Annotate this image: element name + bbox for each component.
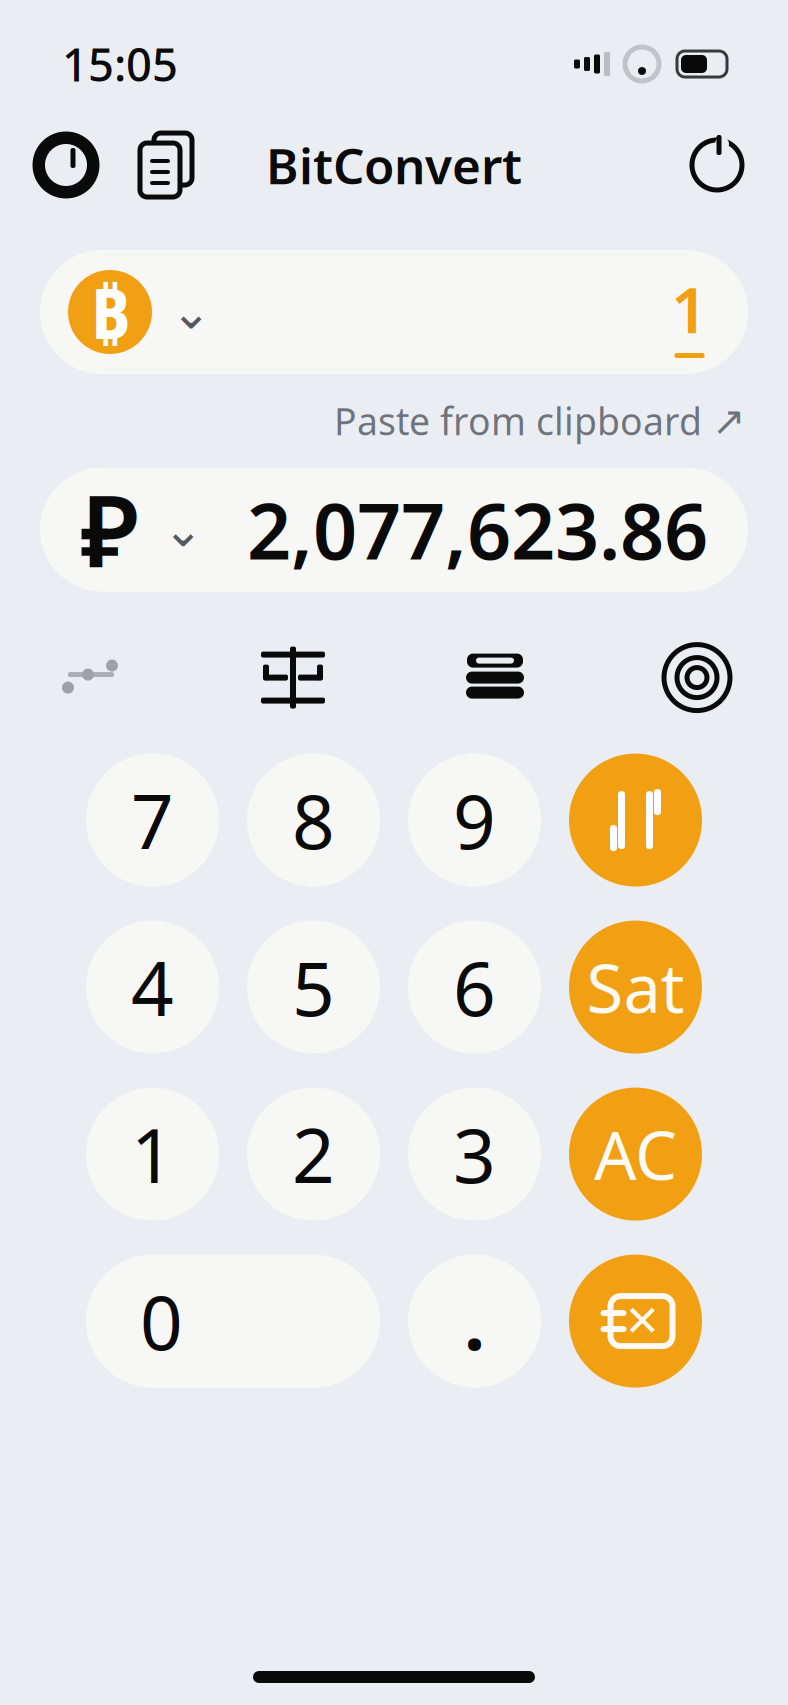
button[interactable]: 8 [247, 754, 380, 887]
button[interactable]: Layers [430, 638, 560, 718]
button[interactable]: ₿ [40, 250, 748, 374]
staticText: 4 [131, 937, 174, 1037]
button[interactable]: 5 [247, 921, 380, 1054]
staticText: ↗ [712, 398, 746, 443]
button[interactable]: Refresh [682, 130, 752, 200]
staticText: 1 [671, 266, 708, 351]
button[interactable]: Chart [26, 638, 156, 718]
staticText: ⌄ [171, 285, 211, 339]
staticText: . [464, 1271, 485, 1371]
button[interactable]: Compare [228, 638, 358, 718]
button[interactable]: Settings [28, 127, 104, 203]
staticText: BitConvert [266, 132, 522, 198]
button[interactable]: 0 [86, 1255, 380, 1388]
button[interactable]: ₽ [40, 468, 748, 592]
staticText: 3 [453, 1104, 496, 1204]
staticText: AC [594, 1110, 677, 1198]
button[interactable]: 1 [86, 1088, 219, 1221]
button[interactable]: 2 [247, 1088, 380, 1221]
staticText: 0 [140, 1271, 183, 1371]
button[interactable]: Documents [128, 127, 204, 203]
staticText: 15:05 [62, 34, 178, 94]
staticText: Sat [586, 943, 684, 1031]
staticText: 7 [131, 770, 174, 870]
staticText: Paste from clipboard [334, 396, 702, 446]
staticText: 2,077,623.86 [247, 478, 708, 581]
button[interactable]: 7 [86, 754, 219, 887]
staticText: 9 [453, 770, 496, 870]
button[interactable]: . [408, 1255, 541, 1388]
button[interactable]: 3 [408, 1088, 541, 1221]
button[interactable]: Delete [569, 1255, 702, 1388]
staticText: ✕ [624, 1297, 660, 1345]
button[interactable]: 4 [86, 921, 219, 1054]
button[interactable]: All clear [569, 1088, 702, 1221]
staticText: 5 [292, 937, 335, 1037]
button[interactable]: Live rates [632, 638, 762, 718]
button[interactable]: Paste from clipboard [334, 396, 746, 446]
staticText: 6 [453, 937, 496, 1037]
staticText: 1 [131, 1104, 174, 1204]
staticText: ⌄ [163, 502, 203, 557]
staticText: 2 [292, 1104, 335, 1204]
staticText: 8 [292, 770, 335, 870]
button[interactable]: 9 [408, 754, 541, 887]
button[interactable]: Satoshi [569, 921, 702, 1054]
staticText: ₿ [90, 266, 130, 358]
button[interactable]: 6 [408, 921, 541, 1054]
staticText: ₽ [80, 464, 139, 595]
button[interactable]: Swap currencies [569, 754, 702, 887]
